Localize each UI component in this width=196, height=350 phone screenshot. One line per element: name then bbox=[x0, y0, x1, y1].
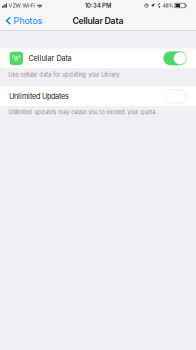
staticText: 48% bbox=[162, 2, 173, 9]
staticText: Cellular Data bbox=[28, 54, 71, 63]
button[interactable]: Unlimited Updates bbox=[0, 86, 196, 106]
staticText: Unlimited updates may cause you to excee… bbox=[8, 109, 157, 116]
button[interactable]: Cellular Data bbox=[0, 48, 196, 68]
staticText: Unlimited Updates bbox=[9, 92, 69, 101]
staticText: 10:34 PM bbox=[85, 2, 111, 9]
staticText: Use cellular data for updating your Libr… bbox=[8, 71, 121, 78]
button[interactable]: Photos bbox=[0, 11, 48, 30]
staticText: VZW Wi-Fi bbox=[9, 2, 35, 9]
staticText: Cellular Data bbox=[72, 15, 123, 26]
staticText: Photos bbox=[14, 15, 43, 26]
